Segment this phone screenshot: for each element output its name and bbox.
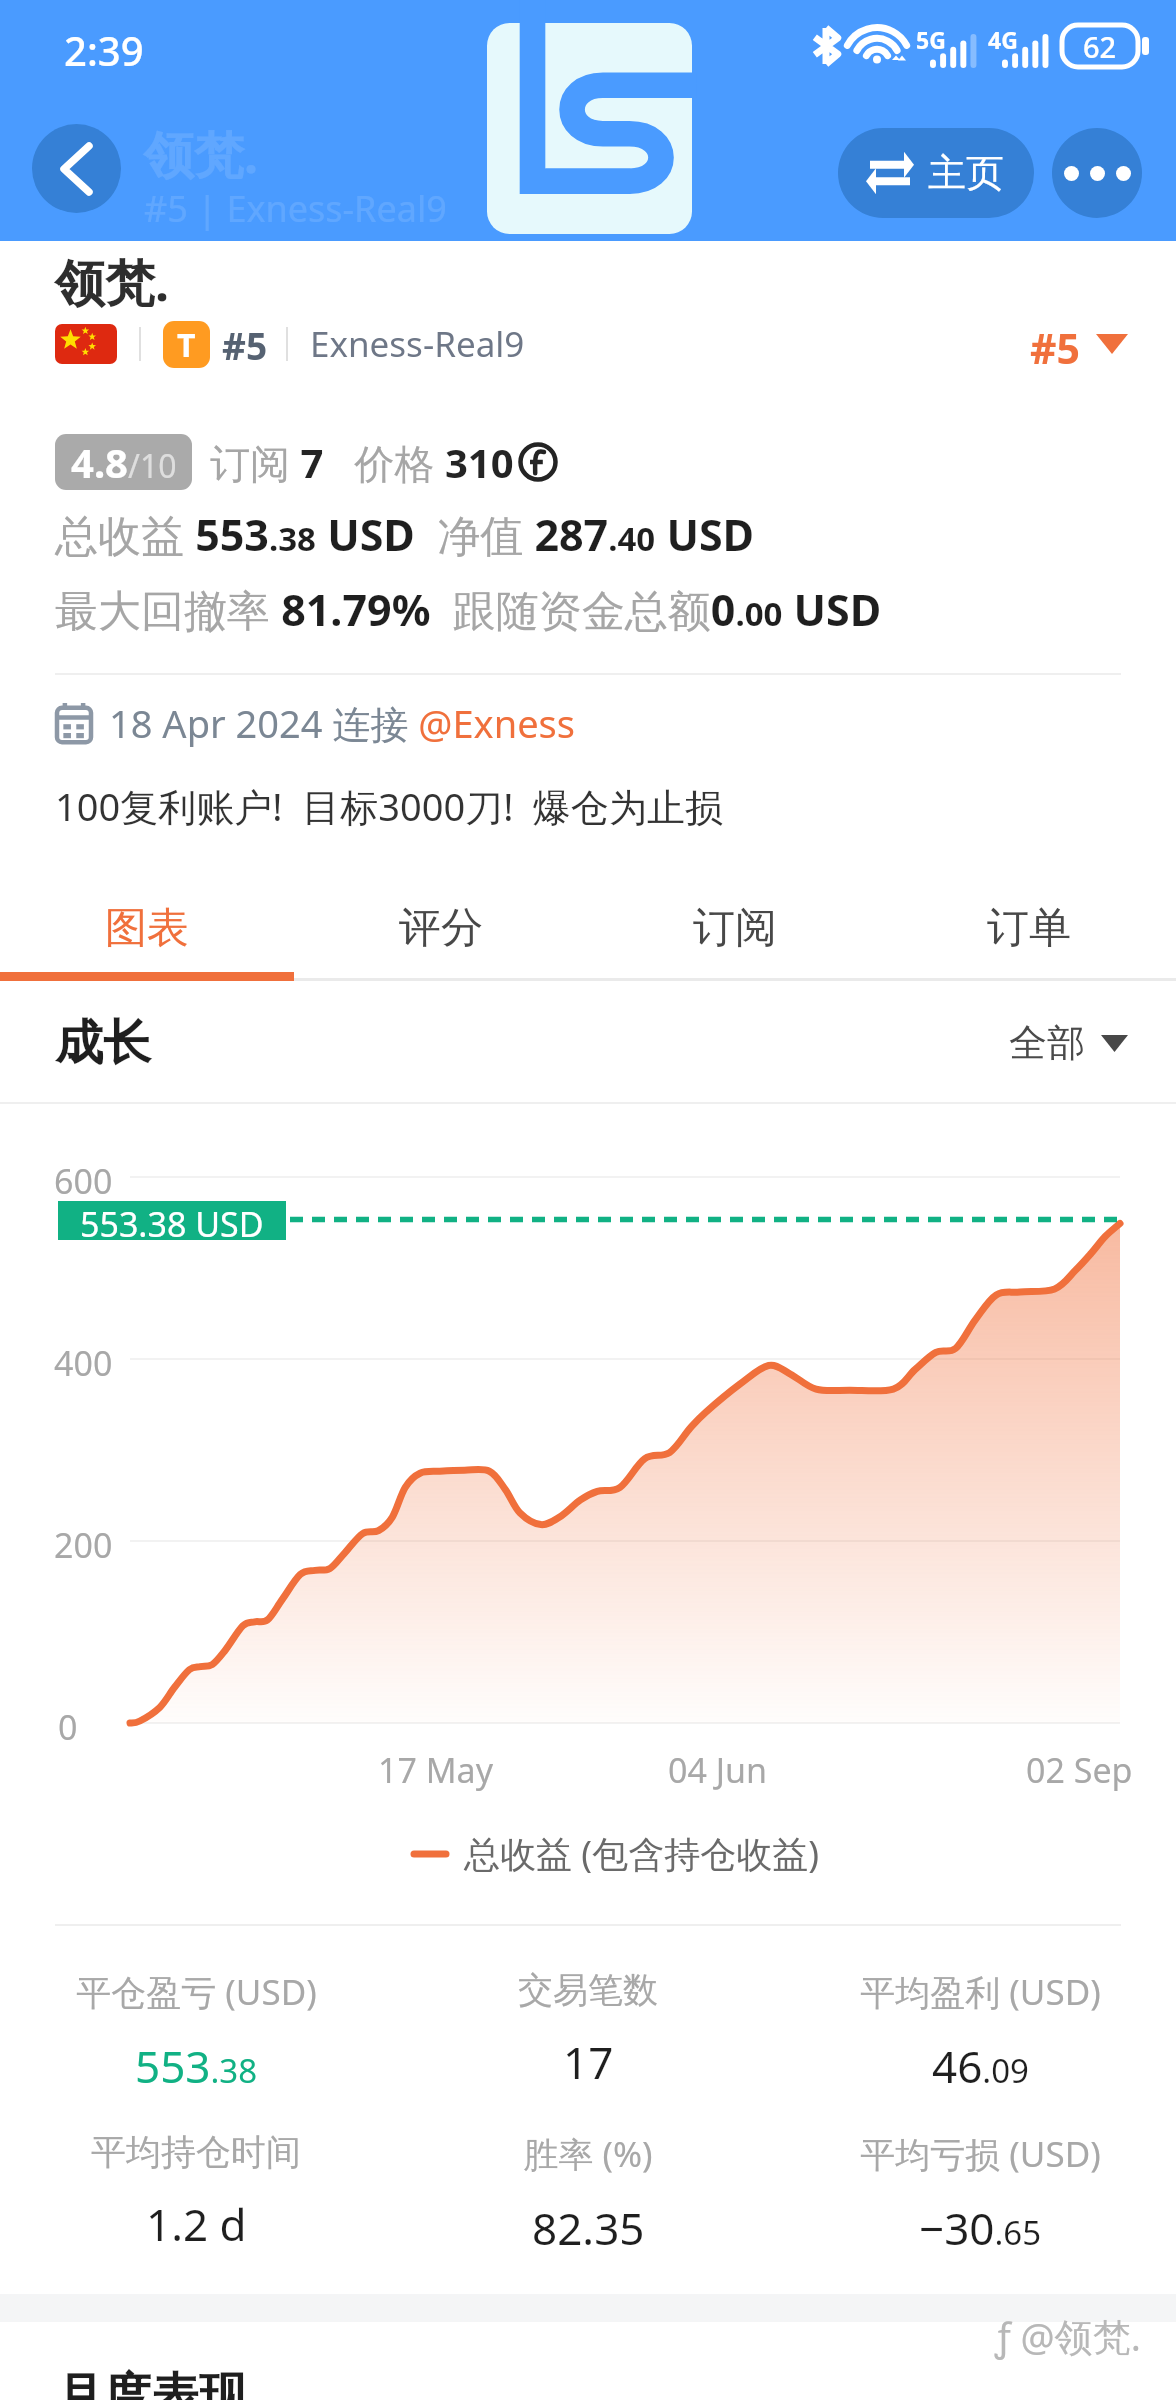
staticText: 400 xyxy=(54,1340,113,1386)
staticText: 图表 xyxy=(105,902,189,955)
staticText: 4G xyxy=(988,24,1018,55)
staticText: 评分 xyxy=(399,902,483,955)
staticText: 订单 xyxy=(987,902,1071,955)
button[interactable]: 主页 xyxy=(838,128,1034,218)
staticText: 04 Jun xyxy=(668,1747,768,1793)
staticText: 553.38 USD xyxy=(80,1201,264,1240)
staticText: 1.2 d xyxy=(146,2194,247,2254)
staticText: 订阅 7 价格 310 xyxy=(210,435,514,490)
staticText: 4.8/10 xyxy=(71,435,177,489)
staticText: 2:39 xyxy=(64,23,144,77)
staticText: 46.09 xyxy=(932,2036,1029,2096)
staticText: #5 | Exness-Real9 xyxy=(144,184,447,233)
button[interactable]: Back xyxy=(32,124,121,213)
staticText: 平均持仓时间 xyxy=(91,2130,301,2174)
staticText: 平仓盈亏 (USD) xyxy=(76,1968,317,2016)
staticText: 平均亏损 (USD) xyxy=(860,2130,1101,2178)
button[interactable]: 订单 xyxy=(882,884,1176,972)
staticText: 600 xyxy=(54,1158,113,1204)
staticText: 订阅 xyxy=(693,902,777,955)
button[interactable]: 全部 xyxy=(1009,1019,1128,1067)
staticText: 最大回撤率 81.79% 跟随资金总额0.00 USD xyxy=(55,580,882,639)
staticText: T xyxy=(177,323,196,367)
staticText: 02 Sep xyxy=(1026,1747,1133,1793)
button[interactable]: More options xyxy=(1052,128,1142,218)
staticText: 月度表现 xyxy=(55,2366,247,2400)
staticText: 62 xyxy=(1083,27,1117,66)
staticText: ƒ @领梵. xyxy=(995,2310,1141,2362)
staticText: 18 Apr 2024 连接 @Exness xyxy=(109,697,575,749)
staticText: 交易笔数 xyxy=(518,1968,658,2012)
staticText: 总收益 (包含持仓收益) xyxy=(464,1829,819,1878)
staticText: 主页 xyxy=(928,149,1004,197)
staticText: 100复利账户! 目标3000刀! 爆仓为止损 xyxy=(55,780,724,832)
staticText: −30.65 xyxy=(919,2198,1042,2258)
button[interactable]: 订阅 xyxy=(588,884,882,972)
staticText: 5G xyxy=(916,24,946,55)
staticText: Exness-Real9 xyxy=(310,320,525,368)
staticText: 82.35 xyxy=(532,2198,645,2258)
staticText: #5 xyxy=(222,320,268,368)
staticText: 200 xyxy=(54,1522,113,1568)
staticText: 17 xyxy=(563,2032,614,2092)
staticText: 平均盈利 (USD) xyxy=(860,1968,1101,2016)
staticText: 553.38 xyxy=(135,2036,258,2096)
staticText: 成长 xyxy=(55,1013,151,1073)
button[interactable]: #5 xyxy=(1030,320,1128,368)
staticText: 总收益 553.38 USD 净值 287.40 USD xyxy=(55,505,755,564)
staticText: #5 xyxy=(1030,320,1080,368)
staticText: 胜率 (%) xyxy=(523,2130,653,2178)
staticText: 17 May xyxy=(378,1747,493,1793)
staticText: 全部 xyxy=(1009,1019,1085,1067)
button[interactable]: 18 Apr 2024 连接 @Exness xyxy=(55,697,575,749)
staticText: 领梵. xyxy=(55,248,170,316)
staticText: 0 xyxy=(58,1704,78,1750)
button[interactable]: 图表 xyxy=(0,884,294,972)
staticText: 领梵. xyxy=(144,120,259,188)
button[interactable]: 评分 xyxy=(294,884,588,972)
